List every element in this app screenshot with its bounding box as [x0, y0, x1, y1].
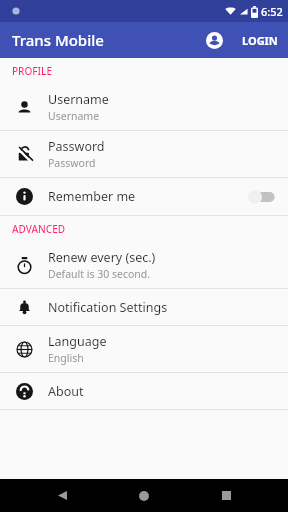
staticText: ADVANCED: [12, 222, 66, 236]
button[interactable]: Username: [0, 84, 288, 130]
button[interactable]: Language: [0, 326, 288, 372]
button[interactable]: LOGIN: [232, 22, 288, 58]
staticText: English: [48, 351, 84, 365]
staticText: 6:52: [261, 4, 283, 19]
button[interactable]: About: [0, 373, 288, 409]
button[interactable]: Password: [0, 131, 288, 177]
staticText: Password: [48, 138, 105, 155]
staticText: Trans Mobile: [12, 30, 104, 50]
staticText: Remember me: [48, 188, 247, 205]
staticText: Language: [48, 333, 107, 350]
staticText: Username: [48, 91, 109, 108]
button[interactable]: Remember me: [0, 178, 288, 215]
button[interactable]: Recent apps: [206, 479, 246, 512]
staticText: LOGIN: [242, 33, 278, 48]
staticText: Password: [48, 156, 96, 170]
button[interactable]: Account: [196, 22, 232, 58]
staticText: Renew every (sec.): [48, 249, 156, 266]
button[interactable]: Renew every (sec.): [0, 242, 288, 288]
staticText: PROFILE: [12, 64, 52, 78]
button[interactable]: Home: [124, 479, 164, 512]
staticText: Username: [48, 109, 100, 123]
button[interactable]: Back: [42, 479, 82, 512]
staticText: Notification Settings: [48, 299, 168, 316]
staticText: About: [48, 383, 84, 400]
staticText: Default is 30 second.: [48, 267, 151, 281]
button[interactable]: Notification Settings: [0, 289, 288, 325]
